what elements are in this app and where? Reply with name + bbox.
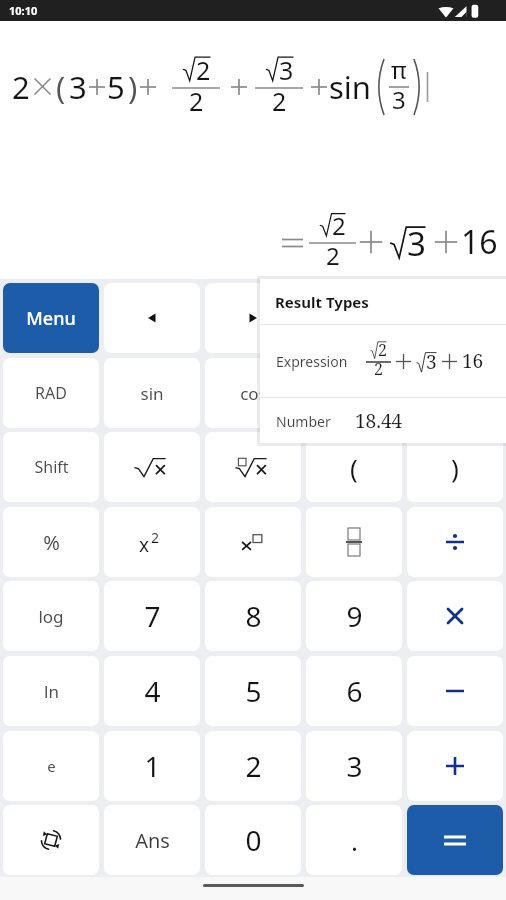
staticText: 6 xyxy=(346,672,363,710)
staticText: Number xyxy=(276,412,331,431)
staticText: 5 xyxy=(245,672,262,710)
staticText: log xyxy=(38,605,64,628)
other: Rotate screen xyxy=(39,828,63,852)
staticText: 3 xyxy=(392,83,406,116)
staticText: 3 xyxy=(407,221,426,266)
button[interactable]: x squared xyxy=(104,507,200,577)
button[interactable]: Nth root xyxy=(205,432,301,502)
button[interactable]: 2 xyxy=(205,731,301,801)
staticText: sin xyxy=(329,66,372,108)
staticText: AC xyxy=(444,307,466,330)
staticText: 3 xyxy=(426,349,437,375)
staticText: 0 xyxy=(245,821,262,859)
staticText: 2 xyxy=(272,84,287,118)
staticText: 2 xyxy=(12,66,30,108)
button[interactable]: ( xyxy=(306,432,402,502)
staticText: 1 xyxy=(144,747,161,785)
button[interactable]: Plus xyxy=(407,731,503,801)
staticText: cos xyxy=(240,382,267,405)
other: Divide xyxy=(444,531,466,553)
staticText: 2 xyxy=(245,747,262,785)
staticText: Ans xyxy=(135,827,170,854)
button[interactable]: sin xyxy=(104,358,200,428)
button[interactable]: 3 xyxy=(306,731,402,801)
button[interactable]: 7 xyxy=(104,581,200,651)
button[interactable]: 6 xyxy=(306,656,402,726)
other: Fraction xyxy=(346,528,362,556)
button[interactable]: % xyxy=(3,507,99,577)
button[interactable]: 9 xyxy=(306,581,402,651)
button[interactable]: Menu xyxy=(3,283,99,353)
staticText: e xyxy=(47,756,56,776)
button[interactable]: ln xyxy=(3,656,99,726)
button[interactable]: 0 xyxy=(205,805,301,875)
button[interactable]: RAD xyxy=(3,358,99,428)
button[interactable]: ^ xyxy=(407,358,503,428)
button[interactable]: Move right xyxy=(205,283,301,353)
staticText: x xyxy=(139,532,150,558)
button[interactable]: tan xyxy=(306,358,402,428)
button[interactable]: log xyxy=(3,581,99,651)
button[interactable]: Shift xyxy=(3,432,99,502)
button[interactable]: 1 xyxy=(104,731,200,801)
button[interactable]: cos xyxy=(205,358,301,428)
other: Nth root xyxy=(233,452,273,482)
button[interactable]: Minus xyxy=(407,656,503,726)
staticText: 4 xyxy=(144,672,161,710)
button[interactable]: DEL xyxy=(306,283,402,353)
staticText: ) xyxy=(451,450,459,485)
staticText: Expression xyxy=(276,352,348,371)
other: Plus xyxy=(444,755,466,777)
staticText: 16 xyxy=(461,220,498,264)
staticText: . xyxy=(351,823,358,858)
staticText: 2 xyxy=(374,358,383,380)
other: Move left xyxy=(145,311,159,325)
button[interactable]: Ans xyxy=(104,805,200,875)
staticText: sin xyxy=(140,382,164,405)
staticText: 3 xyxy=(69,66,87,108)
other: Move right xyxy=(246,311,260,325)
button[interactable]: Rotate screen xyxy=(3,805,99,875)
staticText: 7 xyxy=(144,597,161,635)
button[interactable]: AC xyxy=(407,283,503,353)
other: Minus xyxy=(444,680,466,702)
staticText: 5 xyxy=(107,66,125,108)
button[interactable]: 8 xyxy=(205,581,301,651)
button[interactable]: e xyxy=(3,731,99,801)
staticText: 3 xyxy=(279,53,294,87)
staticText: 10:10 xyxy=(9,3,38,18)
staticText: 2 xyxy=(326,239,340,272)
other: x squared xyxy=(135,529,169,555)
button[interactable]: 5 xyxy=(205,656,301,726)
button[interactable]: Expression xyxy=(260,325,506,397)
staticText: 2 xyxy=(378,339,387,361)
button[interactable]: Move left xyxy=(104,283,200,353)
staticText: DEL xyxy=(339,307,370,330)
staticText: ln xyxy=(44,680,59,703)
button[interactable]: Multiply xyxy=(407,581,503,651)
other: Square root xyxy=(132,452,172,482)
staticText: ( xyxy=(56,66,66,108)
button[interactable]: x to the power xyxy=(205,507,301,577)
staticText: % xyxy=(43,529,60,556)
staticText: 9 xyxy=(346,597,363,635)
staticText: tan xyxy=(341,382,368,405)
button[interactable]: 4 xyxy=(104,656,200,726)
staticText: ) xyxy=(128,66,138,108)
other: Equals xyxy=(442,832,468,848)
button[interactable]: Number xyxy=(260,398,506,443)
staticText: Shift xyxy=(34,456,69,478)
staticText: 2 xyxy=(189,84,204,118)
staticText: 16 xyxy=(462,348,484,374)
button[interactable]: Equals xyxy=(407,805,503,875)
button[interactable]: Fraction xyxy=(306,507,402,577)
staticText: ( xyxy=(350,450,358,485)
staticText: Result Types xyxy=(275,292,369,312)
staticText: 2 xyxy=(332,209,346,242)
staticText: 18.44 xyxy=(355,408,403,434)
button[interactable]: Square root xyxy=(104,432,200,502)
button[interactable]: ) xyxy=(407,432,503,502)
button[interactable]: . xyxy=(306,805,402,875)
staticText: π xyxy=(391,53,407,86)
button[interactable]: Divide xyxy=(407,507,503,577)
